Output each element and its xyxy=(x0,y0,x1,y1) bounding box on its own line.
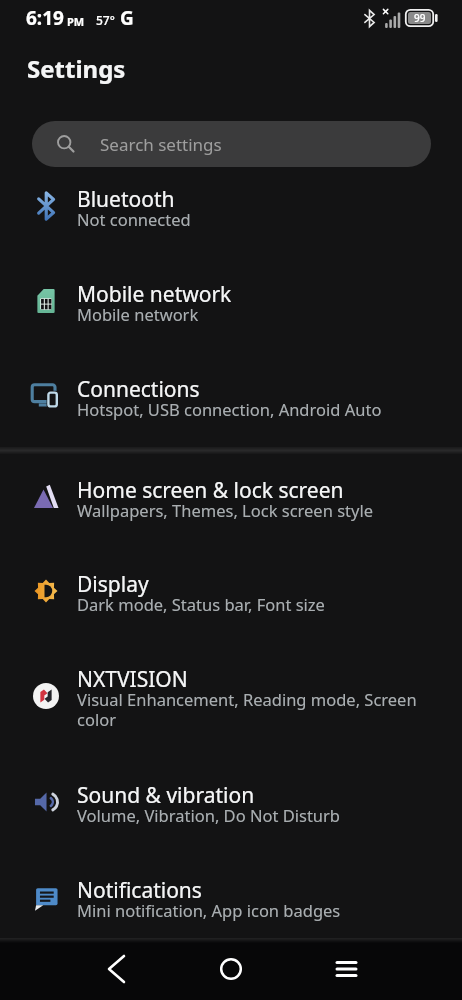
button[interactable]: Home screen & lock screen xyxy=(0,454,462,549)
staticText: Notifications xyxy=(77,876,202,905)
staticText: Not connected xyxy=(77,208,191,230)
staticText: Home screen & lock screen xyxy=(77,476,344,505)
staticText: Connections xyxy=(77,375,200,404)
button[interactable]: Sound & vibration xyxy=(0,759,462,854)
staticText: Volume, Vibration, Do Not Disturb xyxy=(77,804,341,826)
staticText: PM xyxy=(67,14,85,29)
staticText: Settings xyxy=(27,52,126,85)
button[interactable]: Notifications xyxy=(0,854,462,949)
button[interactable] xyxy=(78,938,154,1000)
staticText: Dark mode, Status bar, Font size xyxy=(77,593,325,615)
staticText: Wallpapers, Themes, Lock screen style xyxy=(77,499,373,521)
button[interactable]: Display xyxy=(0,549,462,642)
staticText: Mini notification, App icon badges xyxy=(77,899,341,921)
staticText: Display xyxy=(77,570,149,599)
button[interactable]: NXTVISION xyxy=(0,642,462,759)
staticText: 99 xyxy=(414,11,426,25)
staticText: Sound & vibration xyxy=(77,781,255,810)
staticText: G xyxy=(120,5,134,31)
staticText: 57° xyxy=(96,12,115,28)
button[interactable]: Connections xyxy=(0,353,462,447)
staticText: Mobile network xyxy=(77,303,199,325)
staticText: Hotspot, USB connection, Android Auto xyxy=(77,398,382,420)
button[interactable]: Bluetooth xyxy=(0,163,462,258)
staticText: 6:19 xyxy=(26,5,64,31)
staticText: Mobile network xyxy=(77,280,232,309)
staticText: Search settings xyxy=(100,133,222,156)
button[interactable] xyxy=(308,938,384,1000)
button[interactable]: Mobile network xyxy=(0,258,462,353)
staticText: Bluetooth xyxy=(77,185,175,214)
button[interactable] xyxy=(193,938,269,1000)
button[interactable]: Search settings xyxy=(32,121,431,167)
staticText: NXTVISION xyxy=(77,665,188,694)
staticText: Visual Enhancement, Reading mode, Screen… xyxy=(77,688,417,731)
